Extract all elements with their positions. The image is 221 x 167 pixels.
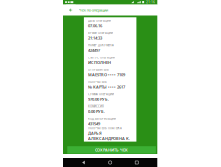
staticText: ДАТА ОПЕРАЦИИ	[88, 19, 111, 22]
staticText: ВРЕМЯ ОПЕРАЦИИ	[88, 31, 113, 35]
staticText: MAESTRO •••• 7109	[88, 72, 125, 77]
staticText: № КАРТЫ •••• 2617	[88, 84, 125, 89]
staticText: 07.06.16	[88, 23, 102, 28]
staticText: СУММА ОПЕРАЦИИ	[88, 92, 114, 96]
staticText: КОД АВТОРИЗАЦИИ	[88, 117, 116, 120]
staticText: 970.00 РУБ.	[88, 96, 109, 102]
staticText: КОМИССИЯ	[88, 105, 104, 108]
staticText: Чек по операции	[79, 7, 108, 13]
staticText: ПОЛУЧАТЕЛЬ	[88, 80, 107, 84]
button[interactable]: Назад	[66, 5, 76, 15]
staticText: ПОЛУЧАТЕЛЬ ПЛАТЕЖА	[88, 126, 122, 130]
staticText: СОХРАНИТЬ ЧЕК	[95, 147, 128, 152]
button[interactable]: Последние приложения	[131, 158, 143, 167]
staticText: НОМЕР ДОКУМЕНТА	[88, 43, 114, 47]
staticText: 0.00 РУБ.	[88, 109, 105, 114]
staticText: 424497	[88, 47, 100, 53]
button[interactable]: СОХРАНИТЬ ЧЕК	[67, 146, 156, 154]
button[interactable]: Домой	[104, 158, 116, 167]
staticText: ИСПОЛНЕН	[88, 60, 111, 65]
staticText: ОТПРАВИТЕЛЬ	[88, 68, 109, 71]
staticText: 21:16	[146, 0, 155, 4]
staticText: 21:14:33	[88, 35, 102, 40]
staticText: ДАРЬЯ АЛЕКСАНДРОВНА К.	[88, 131, 130, 141]
button[interactable]: Назад	[78, 158, 90, 167]
staticText: 431549	[88, 121, 100, 126]
staticText: СТАТУС ОПЕРАЦИИ	[88, 56, 115, 59]
